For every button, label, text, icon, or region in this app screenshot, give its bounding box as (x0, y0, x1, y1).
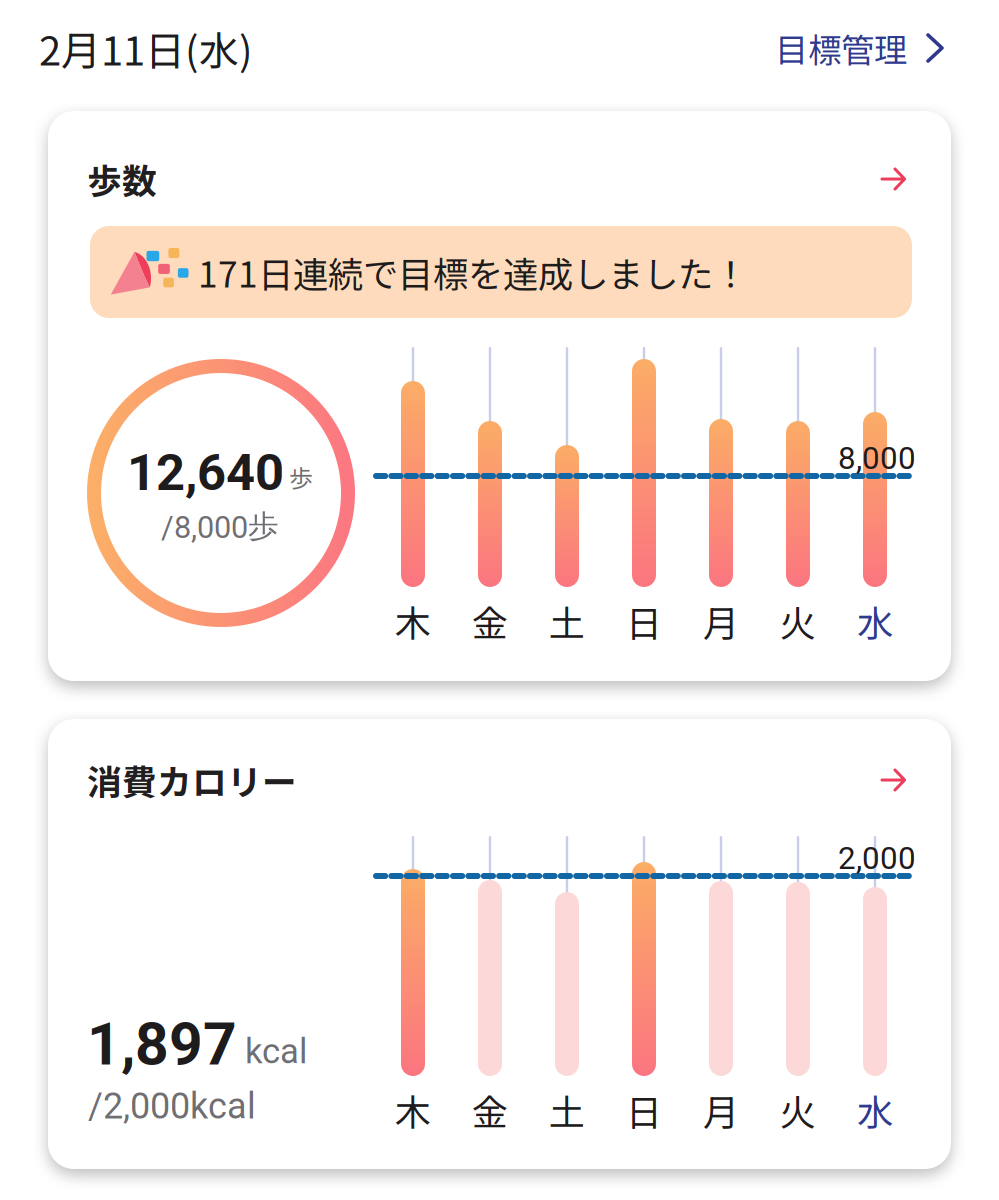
staticText: 月 (703, 595, 739, 647)
staticText: 水 (857, 1084, 893, 1136)
staticText: 金 (472, 595, 508, 647)
staticText: 2,000 (838, 840, 916, 877)
staticText: /8,000歩 (161, 507, 279, 546)
staticText: 1,897 (87, 1010, 237, 1079)
staticText: kcal (245, 1031, 307, 1072)
staticText: 8,000 (838, 440, 916, 477)
staticText: 12,640 (127, 443, 284, 502)
staticText: 土 (549, 595, 585, 647)
staticText: 171日連続で目標を達成しました！ (198, 246, 748, 298)
staticText: 金 (472, 1084, 508, 1136)
staticText: 水 (857, 595, 893, 647)
staticText: 消費カロリー (87, 755, 297, 805)
staticText: 歩 (289, 460, 313, 494)
staticText: 土 (549, 1084, 585, 1136)
staticText: 日 (626, 595, 662, 647)
button[interactable]: 目標管理 (775, 18, 944, 78)
button[interactable]: 消費カロリーの詳細へ (874, 761, 913, 799)
staticText: 日 (626, 1084, 662, 1136)
staticText: 月 (703, 1084, 739, 1136)
staticText: 木 (395, 595, 431, 647)
staticText: 目標管理 (775, 24, 907, 72)
staticText: 2月11日(水) (39, 19, 253, 77)
staticText: 火 (780, 595, 816, 647)
staticText: 火 (780, 1084, 816, 1136)
button[interactable]: 歩数の詳細へ (874, 160, 913, 198)
staticText: 歩数 (87, 154, 157, 204)
staticText: 木 (395, 1084, 431, 1136)
staticText: /2,000kcal (88, 1085, 256, 1127)
